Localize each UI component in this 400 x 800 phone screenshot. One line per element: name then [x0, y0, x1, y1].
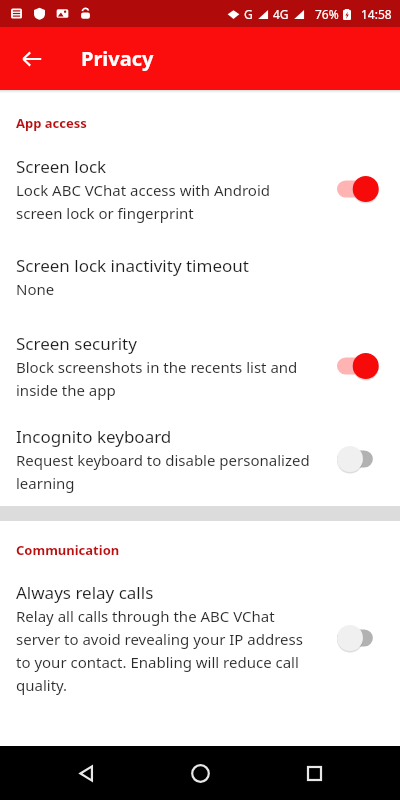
staticText: Screen security — [16, 332, 137, 355]
button[interactable]: Screen security on — [334, 348, 386, 384]
staticText: Screen lock — [16, 155, 107, 178]
staticText: App access — [16, 114, 87, 132]
button[interactable]: Always relay calls — [0, 581, 400, 695]
button[interactable]: Screen lock inactivity timeout — [0, 254, 400, 299]
staticText: Always relay calls — [16, 581, 154, 604]
button[interactable]: Screen security — [0, 332, 400, 400]
staticText: 14:58 — [361, 6, 392, 22]
staticText: Privacy — [81, 45, 154, 72]
staticText: Lock ABC VChat access with Android scree… — [16, 180, 271, 223]
button[interactable]: Always relay calls off — [334, 620, 386, 656]
button[interactable]: Incognito keyboard off — [334, 441, 386, 477]
button[interactable]: Screen lock — [0, 155, 400, 223]
staticText: Communication — [16, 541, 120, 559]
staticText: Incognito keyboard — [16, 425, 172, 448]
button[interactable]: Back — [12, 39, 52, 79]
staticText: Screen lock inactivity timeout — [16, 254, 249, 277]
staticText: G — [244, 6, 253, 22]
button[interactable]: Screen lock on — [334, 171, 386, 207]
staticText: 76% — [315, 6, 339, 22]
staticText: Block screenshots in the recents list an… — [16, 357, 298, 400]
staticText: Relay all calls through the ABC VChat se… — [16, 606, 303, 695]
button[interactable]: Home — [172, 746, 228, 800]
button[interactable]: Incognito keyboard — [0, 425, 400, 493]
staticText: 4G — [273, 6, 289, 22]
button[interactable]: Recent apps — [286, 746, 342, 800]
staticText: None — [16, 279, 55, 299]
staticText: Request keyboard to disable personalized… — [16, 450, 310, 493]
button[interactable]: Back — [58, 746, 114, 800]
